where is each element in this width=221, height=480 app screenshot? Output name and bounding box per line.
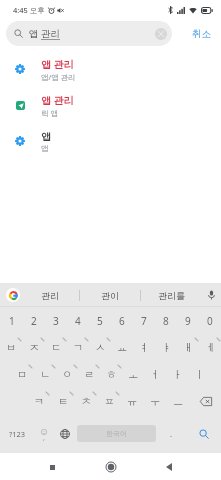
staticText: ㅡ bbox=[173, 395, 184, 408]
button[interactable]: ㅠ bbox=[121, 388, 144, 415]
staticText: 4 bbox=[75, 314, 81, 328]
staticText: ㅊ bbox=[81, 395, 92, 408]
button[interactable]: 1 bbox=[0, 307, 23, 334]
staticText: 4:45 오후 bbox=[13, 5, 45, 15]
staticText: 한국어 bbox=[106, 429, 127, 438]
button[interactable]: ㅛ bbox=[111, 334, 133, 361]
button[interactable]: ㅑ bbox=[155, 334, 177, 361]
staticText: ㅑ bbox=[161, 341, 172, 354]
button[interactable]: 지우기 bbox=[190, 388, 221, 415]
button[interactable]: 관이 bbox=[80, 283, 140, 307]
staticText: ㄹ bbox=[84, 368, 95, 381]
staticText: ㅜ bbox=[150, 395, 161, 408]
staticText: 8 bbox=[163, 314, 169, 328]
staticText: 2 bbox=[31, 314, 37, 328]
staticText: 5 bbox=[97, 314, 103, 328]
button[interactable]: 관리를 bbox=[141, 283, 201, 307]
button[interactable]: ㅐ bbox=[177, 334, 199, 361]
button[interactable]: ㄴ bbox=[34, 361, 56, 388]
button[interactable]: 언어 변경 bbox=[53, 415, 77, 452]
staticText: ?123 bbox=[9, 429, 26, 439]
staticText: 앱/앱 관리 bbox=[41, 72, 76, 82]
staticText: ㅏ bbox=[172, 368, 183, 381]
button[interactable]: ㅂ bbox=[0, 334, 23, 361]
staticText: ㅁ bbox=[17, 368, 28, 381]
button[interactable]: 7 bbox=[133, 307, 155, 334]
button[interactable]: 음성 입력 bbox=[201, 283, 221, 307]
button[interactable]: ㅍ bbox=[98, 388, 121, 415]
button[interactable]: ㅅ bbox=[89, 334, 111, 361]
button[interactable]: 4 bbox=[67, 307, 89, 334]
button[interactable]: ㅗ bbox=[122, 361, 144, 388]
button[interactable]: ㅈ bbox=[23, 334, 45, 361]
button[interactable]: ㅕ bbox=[133, 334, 155, 361]
button[interactable]: ㅣ bbox=[188, 361, 210, 388]
button[interactable]: ㅜ bbox=[144, 388, 167, 415]
button[interactable]: ㅌ bbox=[51, 388, 75, 415]
button[interactable]: 0 bbox=[199, 307, 221, 334]
staticText: 앱 관리 bbox=[29, 27, 60, 40]
button[interactable]: 검색 bbox=[186, 415, 221, 452]
staticText: ㅎ bbox=[106, 368, 117, 381]
button[interactable]: 5 bbox=[89, 307, 111, 334]
staticText: 앱 관리 bbox=[41, 93, 74, 107]
button[interactable]: 2 bbox=[23, 307, 45, 334]
staticText: ㅍ bbox=[104, 395, 115, 408]
button[interactable]: 앱 관리 bbox=[6, 21, 172, 46]
button[interactable]: ㅎ bbox=[100, 361, 122, 388]
button[interactable]: ㅁ bbox=[11, 361, 34, 388]
staticText: , bbox=[43, 433, 45, 443]
button[interactable]: ㅋ bbox=[27, 388, 51, 415]
staticText: ㅣ bbox=[194, 368, 205, 381]
staticText: 관리 bbox=[41, 290, 59, 301]
button[interactable]: 8 bbox=[155, 307, 177, 334]
staticText: 관리를 bbox=[158, 290, 185, 301]
staticText: ㅌ bbox=[58, 395, 69, 408]
staticText: ㅇ bbox=[62, 368, 73, 381]
button[interactable]: ㄷ bbox=[45, 334, 67, 361]
button[interactable]: Google bbox=[6, 288, 20, 302]
button[interactable]: 이모티콘 bbox=[35, 415, 53, 452]
staticText: ㅂ bbox=[6, 341, 17, 354]
staticText: 1 bbox=[9, 314, 15, 328]
button[interactable]: 홈 bbox=[99, 455, 123, 479]
staticText: ㅈ bbox=[29, 341, 40, 354]
button[interactable]: 한국어 bbox=[77, 425, 156, 442]
button[interactable]: 앱 bbox=[0, 123, 221, 159]
staticText: 0 bbox=[207, 314, 213, 328]
button[interactable]: 6 bbox=[111, 307, 133, 334]
button[interactable]: ㅔ bbox=[199, 334, 221, 361]
staticText: ㄴ bbox=[40, 368, 51, 381]
staticText: ㅠ bbox=[127, 395, 138, 408]
button[interactable]: 앱 관리 bbox=[0, 87, 221, 123]
button[interactable]: 뒤로 bbox=[157, 455, 181, 479]
button[interactable]: 검색어 지우기 bbox=[155, 28, 167, 40]
staticText: ㄷ bbox=[51, 341, 62, 354]
button[interactable]: 관리 bbox=[20, 283, 79, 307]
button[interactable]: ㅡ bbox=[167, 388, 190, 415]
staticText: ㅐ bbox=[183, 341, 194, 354]
staticText: 앱 관리 bbox=[41, 57, 74, 71]
button[interactable]: ㅇ bbox=[56, 361, 78, 388]
staticText: 앱 bbox=[41, 144, 49, 153]
button[interactable]: ?123 bbox=[0, 415, 35, 452]
staticText: 9 bbox=[185, 314, 191, 328]
button[interactable]: ㅏ bbox=[166, 361, 188, 388]
staticText: ㅔ bbox=[205, 341, 216, 354]
button[interactable]: 앱 관리 bbox=[0, 51, 221, 87]
button[interactable]: ㄹ bbox=[78, 361, 100, 388]
staticText: ㄱ bbox=[73, 341, 84, 354]
button[interactable]: ㅊ bbox=[75, 388, 98, 415]
staticText: ㅋ bbox=[34, 395, 45, 408]
staticText: . bbox=[170, 428, 173, 439]
button[interactable]: 3 bbox=[45, 307, 67, 334]
button[interactable]: ㄱ bbox=[67, 334, 89, 361]
staticText: 6 bbox=[119, 314, 125, 328]
button[interactable]: 9 bbox=[177, 307, 199, 334]
button[interactable]: 최근 사용 앱 bbox=[40, 455, 64, 479]
button[interactable]: ㅓ bbox=[144, 361, 166, 388]
staticText: ㅛ bbox=[117, 341, 128, 354]
button[interactable]: 취소 bbox=[190, 25, 213, 43]
staticText: 앱 bbox=[41, 130, 51, 143]
